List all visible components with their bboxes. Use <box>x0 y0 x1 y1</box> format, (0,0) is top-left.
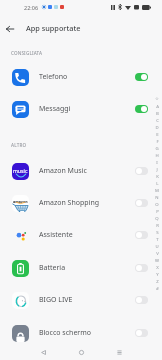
staticText: F <box>156 138 159 144</box>
staticText: V <box>156 250 159 256</box>
button[interactable]: music <box>0 155 162 187</box>
button[interactable]: Off <box>135 329 148 337</box>
staticText: Messaggi <box>39 104 71 114</box>
staticText: W <box>155 257 159 263</box>
staticText: BIGO LIVE <box>39 295 73 305</box>
staticText: # <box>156 285 159 291</box>
staticText: Amazon Shopping <box>39 198 100 208</box>
staticText: App supportate <box>26 23 81 33</box>
staticText: CONSIGLIATA <box>11 50 43 56</box>
button[interactable]: On <box>135 105 148 113</box>
button[interactable]: Blocco schermo <box>0 317 162 349</box>
staticText: music <box>13 167 28 174</box>
staticText: H <box>155 152 159 158</box>
button[interactable]: amazon <box>0 187 162 219</box>
staticText: K <box>156 173 159 179</box>
staticText: amazon <box>13 199 28 204</box>
staticText: ☆ <box>155 96 159 101</box>
staticText: 22:06 <box>24 4 39 11</box>
staticText: E <box>156 131 159 137</box>
staticText: N <box>155 194 159 200</box>
staticText: Assistente <box>39 230 73 240</box>
staticText: ALTRO <box>11 142 27 148</box>
button[interactable]: Recents <box>100 344 138 360</box>
staticText: D <box>155 124 159 130</box>
button[interactable]: Off <box>135 167 148 175</box>
staticText: X <box>156 264 159 270</box>
staticText: B <box>156 110 159 116</box>
button[interactable]: Home <box>62 344 100 360</box>
staticText: T <box>156 236 159 242</box>
staticText: Y <box>156 271 159 277</box>
button[interactable]: Off <box>135 264 148 272</box>
staticText: G <box>155 145 159 151</box>
staticText: Telefono <box>39 72 68 82</box>
button[interactable]: BIGO LIVE <box>0 284 162 316</box>
staticText: Batteria <box>39 263 66 273</box>
button[interactable]: Messaggi <box>0 93 162 125</box>
staticText: P <box>156 208 159 214</box>
button[interactable]: Batteria <box>0 252 162 284</box>
staticText: M <box>155 187 159 193</box>
staticText: U <box>155 243 159 249</box>
staticText: C <box>156 117 159 123</box>
button[interactable]: Off <box>135 296 148 304</box>
staticText: Amazon Music <box>39 166 87 176</box>
staticText: A <box>156 103 159 109</box>
staticText: Blocco schermo <box>39 328 92 338</box>
staticText: Z <box>156 278 159 284</box>
button[interactable]: Telefono <box>0 61 162 93</box>
button[interactable]: Back <box>24 344 62 360</box>
staticText: J <box>156 166 158 172</box>
button[interactable]: Assistente <box>0 219 162 251</box>
staticText: Q <box>155 215 159 221</box>
staticText: S <box>156 229 159 235</box>
button[interactable]: Back <box>3 22 16 35</box>
staticText: R <box>156 222 159 228</box>
button[interactable]: Off <box>135 199 148 207</box>
staticText: I <box>156 159 158 165</box>
staticText: O <box>155 201 159 207</box>
staticText: L <box>156 180 159 186</box>
button[interactable]: On <box>135 73 148 81</box>
button[interactable]: Off <box>135 231 148 239</box>
